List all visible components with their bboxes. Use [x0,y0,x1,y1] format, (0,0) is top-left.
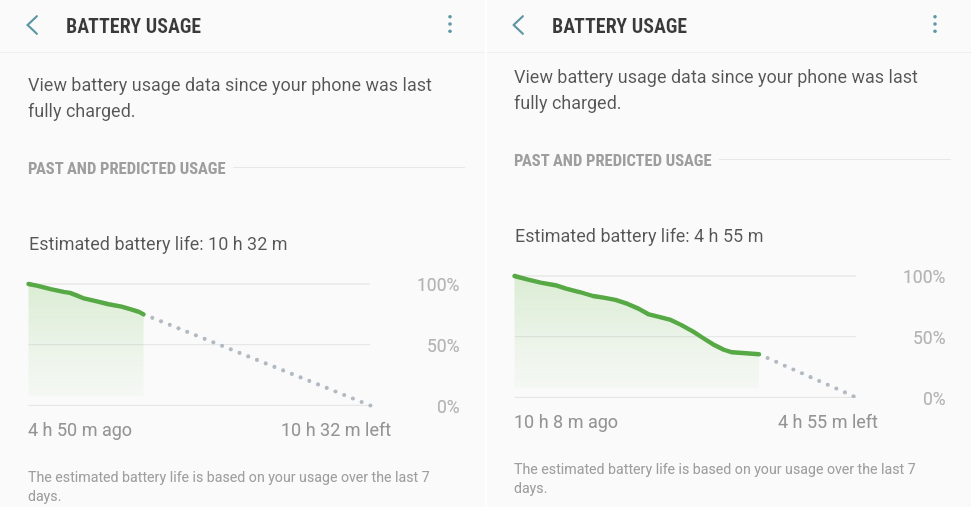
staticText: The estimated battery life is based on y… [28,469,446,505]
staticText: PAST AND PREDICTED USAGE [28,159,226,178]
staticText: Estimated battery life: 10 h 32 m [29,233,288,254]
staticText: 4 h 50 m ago [28,419,133,440]
staticText: PAST AND PREDICTED USAGE [514,151,712,170]
staticText: 10 h 32 m left [281,419,392,440]
staticText: View battery usage data since your phone… [28,74,440,121]
staticText: Estimated battery life: 4 h 55 m [515,225,764,246]
staticText: 50% [913,328,946,349]
staticText: 0% [437,397,460,418]
staticText: BATTERY USAGE [552,14,688,37]
staticText: BATTERY USAGE [66,14,202,37]
staticText: 100% [417,275,460,296]
staticText: 100% [903,267,946,288]
staticText: View battery usage data since your phone… [514,66,926,113]
button[interactable]: Navigate up [10,3,54,47]
staticText: 4 h 55 m left [778,411,878,432]
staticText: 10 h 8 m ago [514,411,619,432]
staticText: The estimated battery life is based on y… [514,461,932,497]
button[interactable]: Navigate up [496,3,540,47]
staticText: 50% [427,336,460,357]
button[interactable]: More options [428,2,472,46]
button[interactable]: More options [913,2,957,46]
staticText: 0% [923,389,946,410]
